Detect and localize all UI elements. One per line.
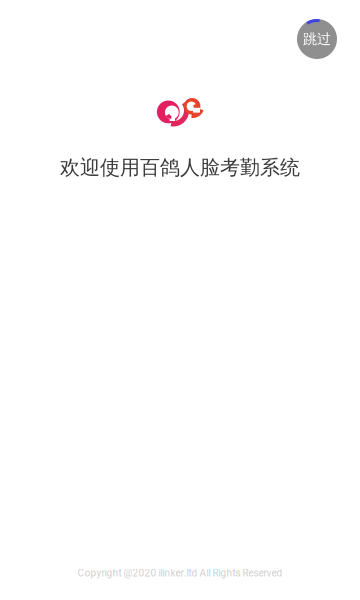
staticText: Copyright @2020 ilinker.ltd All Rights R…	[77, 567, 282, 579]
staticText: 欢迎使用百鸽人脸考勤系统	[60, 155, 300, 180]
staticText: 跳过	[303, 30, 331, 48]
button[interactable]: 跳过	[297, 19, 337, 59]
